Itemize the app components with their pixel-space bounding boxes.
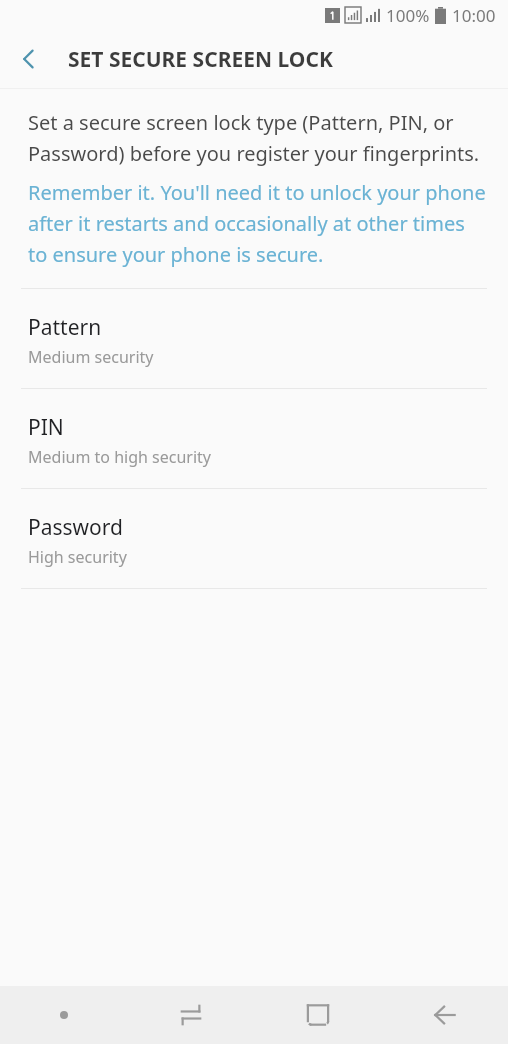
staticText: SET SECURE SCREEN LOCK [68, 45, 333, 74]
staticText: 100% [386, 4, 430, 27]
button[interactable]: Indicator [0, 986, 127, 1044]
staticText: Remember it. You'll need it to unlock yo… [28, 179, 486, 268]
staticText: Set a secure screen lock type (Pattern, … [28, 109, 486, 167]
button[interactable]: Home [254, 986, 381, 1044]
staticText: Medium to high security [28, 446, 211, 468]
staticText: PIN [28, 413, 64, 442]
button[interactable]: Back [0, 30, 58, 88]
staticText: Password [28, 513, 123, 542]
staticText: Pattern [28, 313, 102, 342]
staticText: High security [28, 546, 127, 568]
button[interactable]: Pattern [0, 289, 508, 388]
staticText: Medium security [28, 346, 154, 368]
button[interactable]: Recents [127, 986, 254, 1044]
button[interactable]: PIN [0, 389, 508, 488]
staticText: 10:00 [452, 4, 496, 27]
button[interactable]: Back [381, 986, 508, 1044]
button[interactable]: Password [0, 489, 508, 588]
